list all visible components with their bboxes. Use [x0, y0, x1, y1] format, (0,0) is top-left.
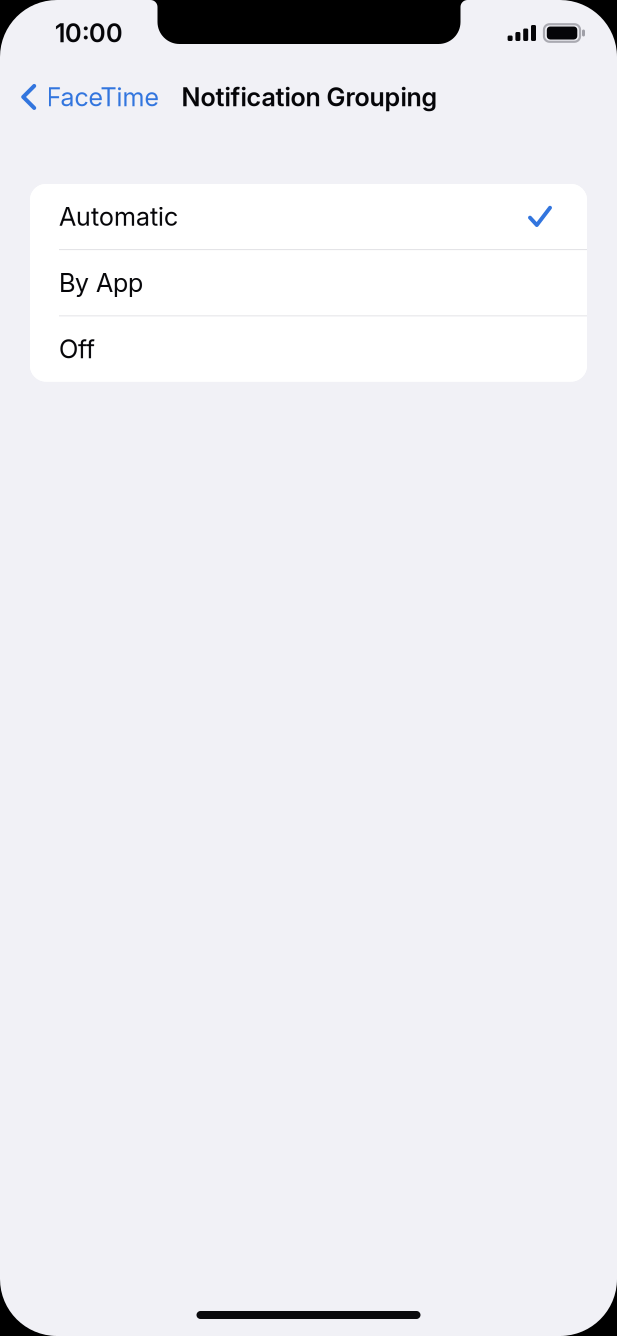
button[interactable]: Off: [30, 317, 587, 382]
button[interactable]: Automatic: [30, 184, 587, 249]
staticText: Notification Grouping: [181, 82, 437, 112]
staticText: 10:00: [55, 18, 123, 48]
staticText: Off: [59, 334, 95, 364]
staticText: FaceTime: [46, 82, 158, 112]
staticText: Automatic: [59, 201, 178, 232]
button[interactable]: FaceTime: [0, 67, 168, 127]
staticText: By App: [59, 267, 143, 298]
button[interactable]: By App: [30, 250, 587, 315]
